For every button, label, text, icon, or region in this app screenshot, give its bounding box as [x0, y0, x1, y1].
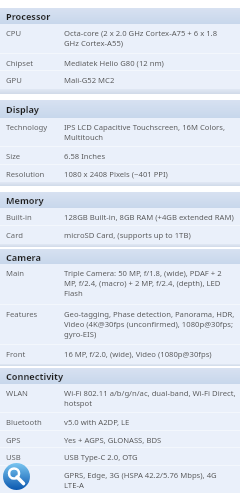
staticText: CPU [6, 28, 22, 38]
staticText: Features [6, 309, 38, 319]
button[interactable]: WLAN [0, 384, 240, 413]
staticText: Octa-core (2 x 2.0 GHz Cortex-A75 + 6 x … [64, 28, 218, 48]
button[interactable]: Chipset [0, 54, 240, 71]
button[interactable]: Connectivity [0, 368, 240, 384]
button[interactable]: Front [0, 345, 240, 364]
button[interactable]: Built-in [0, 208, 240, 226]
staticText: WLAN [6, 388, 28, 398]
staticText: Wi-Fi 802.11 a/b/g/n/ac, dual-band, Wi-F… [64, 388, 236, 408]
staticText: Mediatek Helio G80 (12 nm) [64, 58, 164, 68]
staticText: microSD Card, (supports up to 1TB) [64, 230, 191, 240]
staticText: Processor [6, 10, 51, 22]
button[interactable]: GPRS, Edge, 3G (HSPA 42.2/5.76 Mbps), 4G… [0, 466, 240, 493]
button[interactable]: GPU [0, 71, 240, 89]
staticText: Yes + AGPS, GLONASS, BDS [64, 435, 162, 445]
staticText: Resolution [6, 169, 45, 179]
button[interactable]: Card [0, 226, 240, 244]
staticText: Mali-G52 MC2 [64, 75, 115, 85]
staticText: IPS LCD Capacitive Touchscreen, 16M Colo… [64, 122, 225, 142]
staticText: USB [6, 452, 21, 462]
staticText: Triple Camera: 50 MP, f/1.8, (wide), PDA… [64, 268, 222, 298]
staticText: USB Type-C 2.0, OTG [64, 452, 138, 462]
staticText: v5.0 with A2DP, LE [64, 417, 130, 427]
button[interactable]: Features [0, 305, 240, 345]
button[interactable]: Main [0, 264, 240, 305]
button[interactable]: Resolution [0, 165, 240, 182]
staticText: Built-in [6, 212, 32, 222]
staticText: 6.58 Inches [64, 151, 106, 161]
button[interactable]: USB [0, 448, 240, 466]
staticText: Geo-tagging, Phase detection, Panorama, … [64, 309, 235, 339]
staticText: Card [6, 230, 23, 240]
button[interactable]: GPS [0, 431, 240, 448]
staticText: Front [6, 349, 26, 359]
button[interactable]: Memory [0, 192, 240, 208]
button[interactable]: Camera [0, 249, 240, 264]
staticText: Main [6, 268, 25, 278]
staticText: Bluetooth [6, 417, 42, 427]
staticText: GPRS, Edge, 3G (HSPA 42.2/5.76 Mbps), 4G… [64, 470, 217, 490]
staticText: Display [6, 103, 40, 115]
staticText: Memory [6, 194, 44, 206]
staticText: Technology [6, 122, 48, 132]
staticText: 1080 x 2408 Pixels (~401 PPI) [64, 169, 168, 179]
button[interactable]: Size [0, 147, 240, 165]
button[interactable]: CPU [0, 24, 240, 54]
staticText: Size [6, 151, 21, 161]
staticText: GPU [6, 75, 22, 85]
button[interactable]: Processor [0, 8, 240, 24]
button[interactable]: Technology [0, 118, 240, 147]
staticText: Chipset [6, 58, 34, 68]
button[interactable]: Bluetooth [0, 413, 240, 431]
staticText: Connectivity [6, 370, 64, 382]
staticText: 16 MP, f/2.0, (wide), Video (1080p@30fps… [64, 349, 212, 359]
staticText: 128GB Built-in, 8GB RAM (+4GB extended R… [64, 212, 234, 222]
staticText: GPS [6, 435, 21, 445]
button[interactable]: Display [0, 100, 240, 118]
button[interactable]: Search [3, 463, 30, 490]
staticText: Camera [6, 251, 41, 263]
